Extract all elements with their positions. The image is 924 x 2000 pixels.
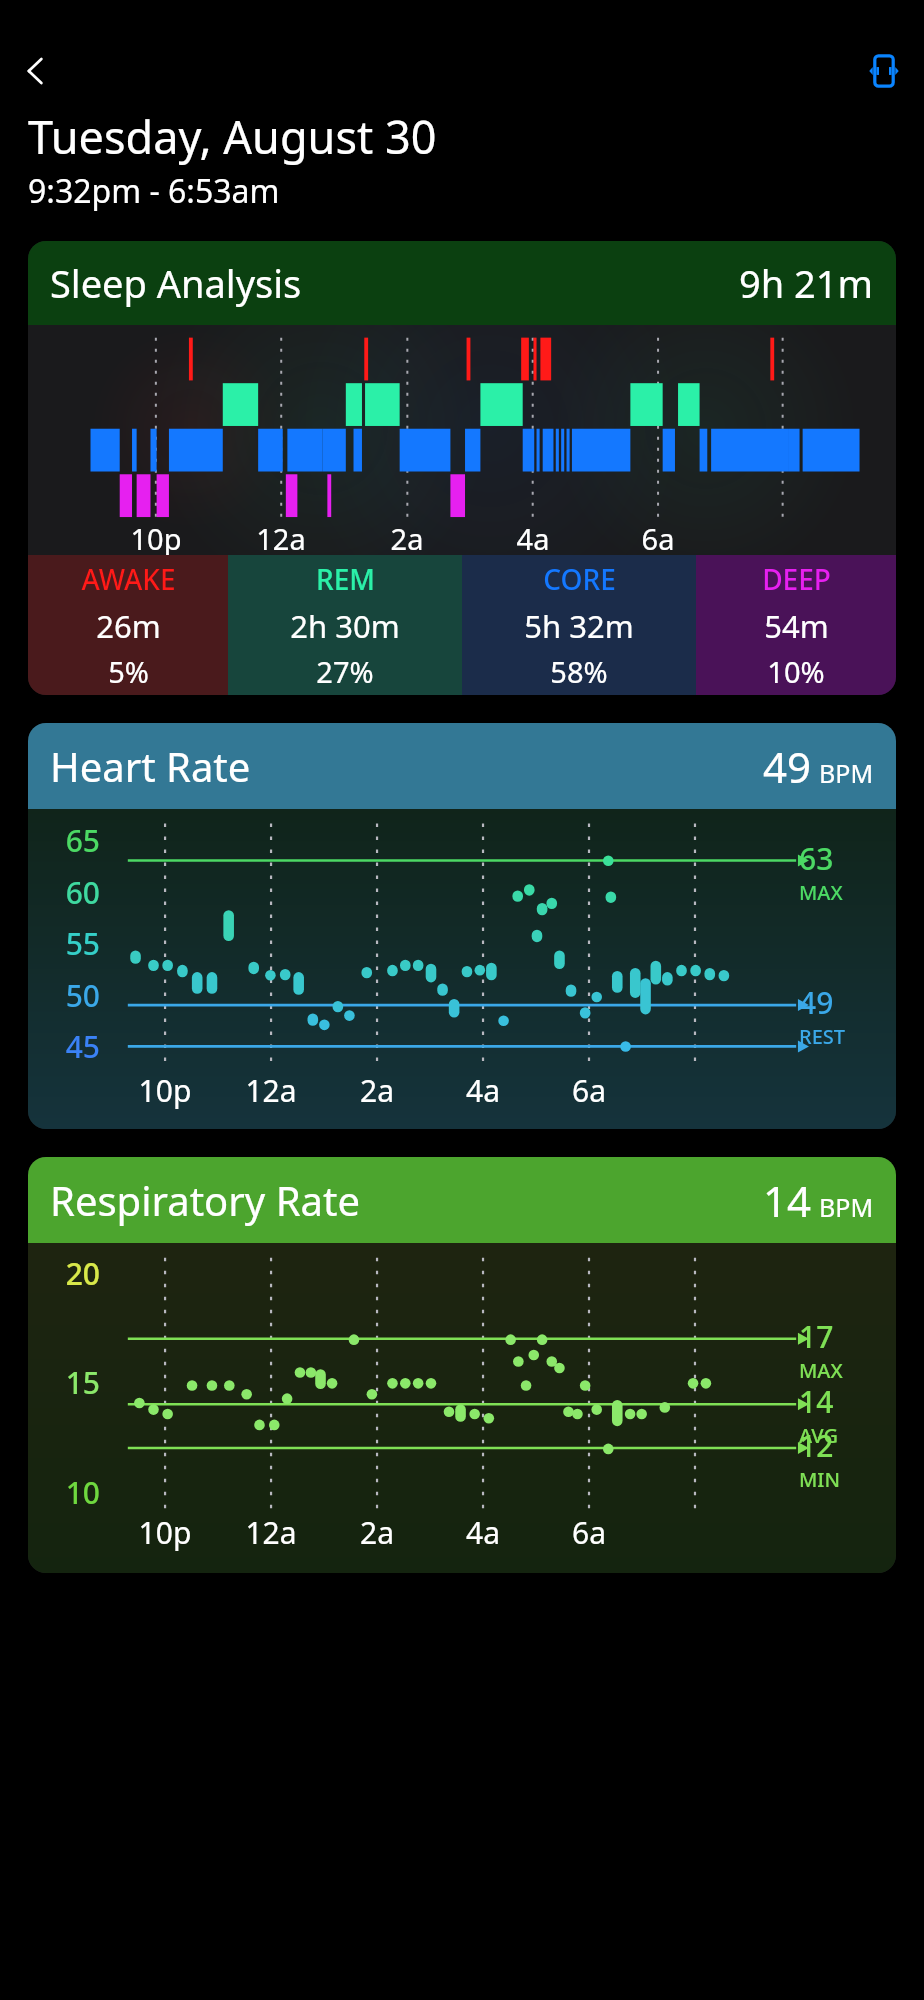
staticText: 54m <box>764 605 829 647</box>
staticText: 10% <box>767 652 825 691</box>
staticText: 58% <box>550 652 608 691</box>
button[interactable]: Respiratory Rate <box>28 1157 896 1573</box>
staticText: 2h 30m <box>290 605 400 647</box>
staticText: 55 <box>32 923 100 964</box>
staticText: MAX <box>799 1357 843 1384</box>
staticText: 20 <box>32 1253 100 1294</box>
staticText: 10p <box>125 1512 205 1553</box>
staticText: 10p <box>116 519 196 558</box>
staticText: Tuesday, August 30 <box>28 106 437 167</box>
staticText: Heart Rate <box>50 739 251 793</box>
staticText: 9h 21m <box>739 257 874 309</box>
button[interactable]: Show on device <box>854 44 914 98</box>
staticText: 2a <box>337 1070 417 1111</box>
staticText: 50 <box>32 975 100 1016</box>
button[interactable]: Back <box>10 45 62 97</box>
staticText: 10 <box>32 1472 100 1513</box>
staticText: 12a <box>231 1512 311 1553</box>
staticText: 9:32pm - 6:53am <box>28 169 280 213</box>
staticText: 4a <box>443 1070 523 1111</box>
staticText: BPM <box>819 1190 874 1224</box>
staticText: Sleep Analysis <box>50 257 302 309</box>
staticText: CORE <box>543 560 616 598</box>
staticText: 17 <box>799 1316 834 1357</box>
staticText: Respiratory Rate <box>50 1173 360 1227</box>
button[interactable]: AWAKE <box>28 555 228 695</box>
staticText: 10p <box>125 1070 205 1111</box>
staticText: REST <box>799 1023 846 1050</box>
staticText: 49 <box>799 982 834 1023</box>
staticText: 45 <box>32 1026 100 1067</box>
staticText: BPM <box>819 756 874 790</box>
staticText: AWAKE <box>81 560 176 598</box>
staticText: 4a <box>493 519 573 558</box>
staticText: MIN <box>799 1466 840 1493</box>
staticText: 15 <box>32 1362 100 1403</box>
staticText: 2a <box>367 519 447 558</box>
staticText: 6a <box>549 1070 629 1111</box>
staticText: 12a <box>231 1070 311 1111</box>
button[interactable]: REM <box>228 555 462 695</box>
button[interactable]: CORE <box>462 555 696 695</box>
staticText: 2a <box>337 1512 417 1553</box>
staticText: 4a <box>443 1512 523 1553</box>
staticText: 26m <box>96 605 161 647</box>
staticText: 14 <box>763 1172 812 1229</box>
staticText: 12a <box>241 519 321 558</box>
staticText: 12 <box>799 1425 834 1466</box>
staticText: AVG <box>799 1422 838 1449</box>
staticText: 60 <box>32 872 100 913</box>
staticText: 5% <box>108 652 149 691</box>
staticText: 6a <box>549 1512 629 1553</box>
staticText: 5h 32m <box>524 605 634 647</box>
staticText: REM <box>316 560 375 598</box>
staticText: 65 <box>32 820 100 861</box>
button[interactable]: DEEP <box>696 555 896 695</box>
staticText: MAX <box>799 879 843 906</box>
staticText: DEEP <box>762 560 831 598</box>
staticText: 63 <box>799 838 834 879</box>
button[interactable]: Sleep Analysis <box>28 241 896 695</box>
staticText: 6a <box>618 519 698 558</box>
staticText: 49 <box>763 738 812 795</box>
staticText: 14 <box>799 1381 834 1422</box>
button[interactable]: Heart Rate <box>28 723 896 1129</box>
staticText: 27% <box>316 652 374 691</box>
